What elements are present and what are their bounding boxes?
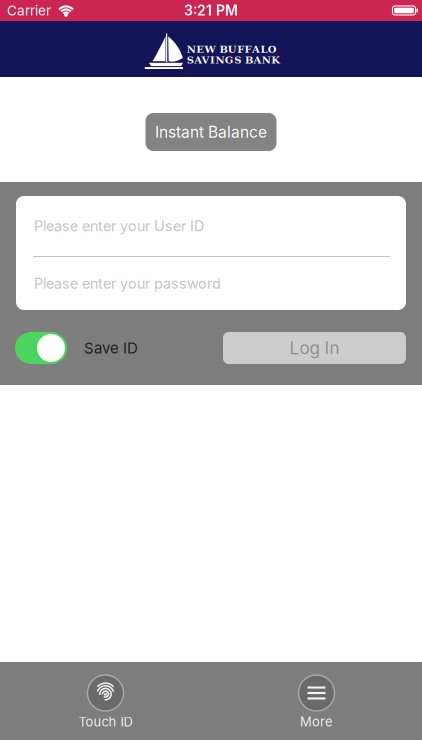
button[interactable]: Touch ID xyxy=(0,662,211,740)
button[interactable]: Save ID xyxy=(15,332,67,364)
staticText: Instant Balance xyxy=(155,123,267,141)
staticText: 3:21 PM xyxy=(184,2,238,19)
button[interactable]: Please enter your User ID xyxy=(16,196,406,256)
button[interactable]: More xyxy=(211,662,422,740)
staticText: More xyxy=(300,714,333,730)
staticText: SAVINGS BANK xyxy=(187,54,280,66)
button[interactable]: Please enter your password xyxy=(16,257,406,310)
staticText: NEW BUFFALO xyxy=(187,43,277,55)
staticText: Please enter your password xyxy=(34,275,221,292)
staticText: Log In xyxy=(289,338,339,358)
staticText: Touch ID xyxy=(78,714,132,730)
staticText: Carrier xyxy=(7,2,51,19)
staticText: Save ID xyxy=(84,339,138,357)
button[interactable]: Instant Balance xyxy=(145,113,276,151)
button[interactable]: Log In xyxy=(223,332,406,364)
staticText: Please enter your User ID xyxy=(34,217,204,235)
